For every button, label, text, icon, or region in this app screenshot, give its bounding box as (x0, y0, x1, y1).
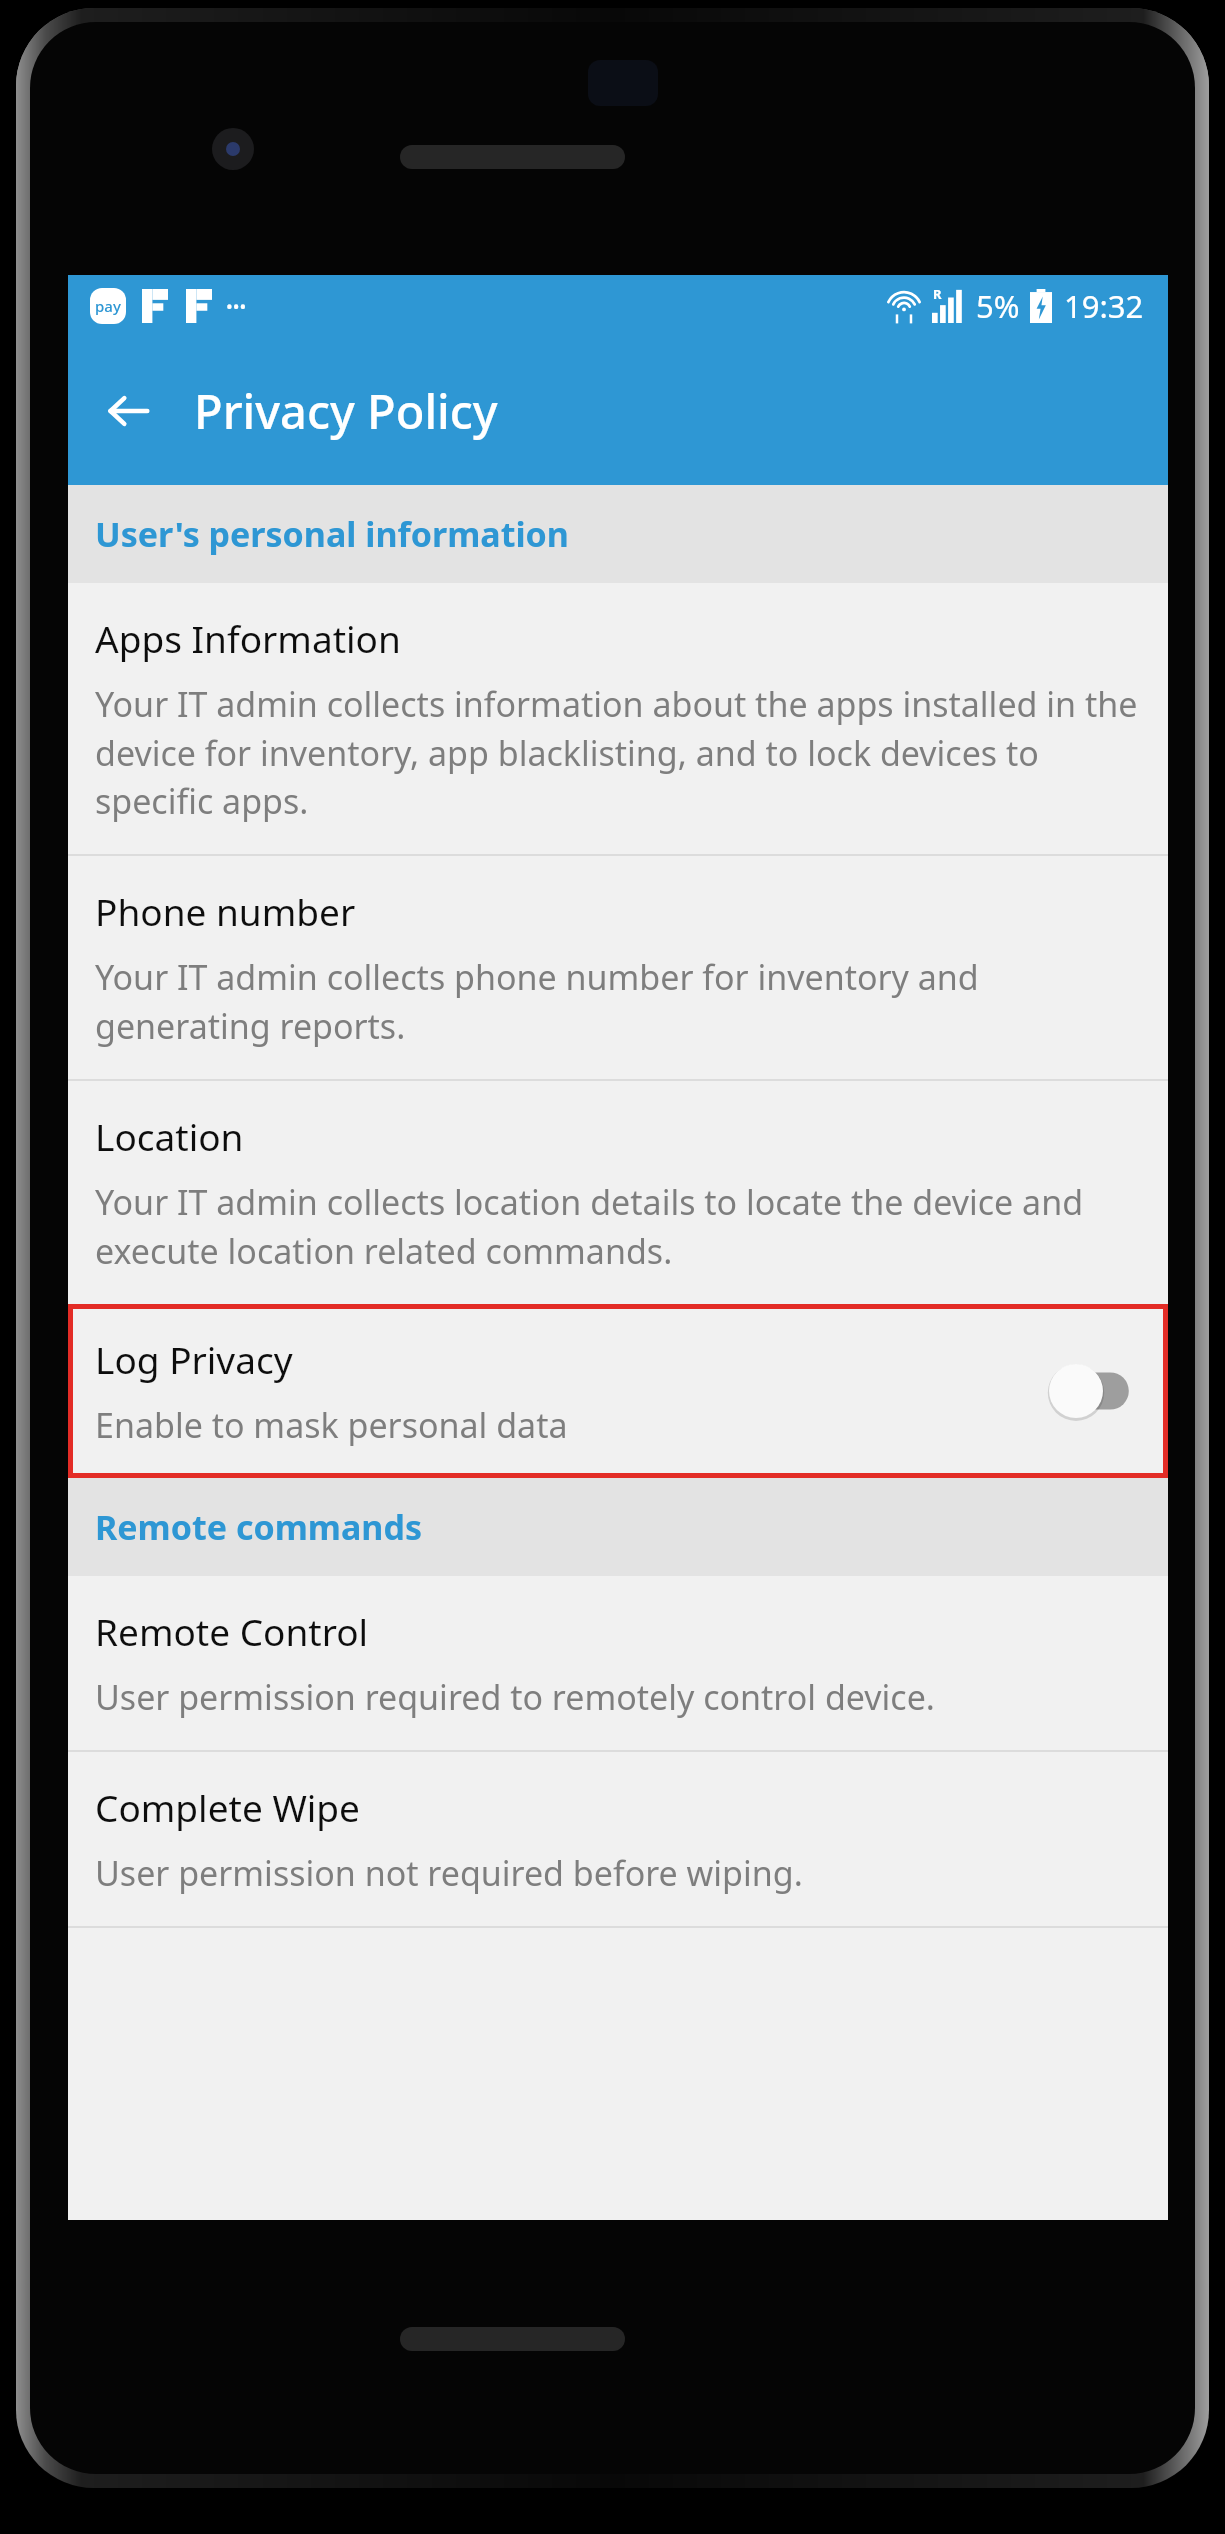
button[interactable]: Phone number (68, 856, 1168, 1079)
staticText: Remote Control (95, 1606, 369, 1656)
button[interactable]: Apps Information (68, 583, 1168, 854)
button[interactable]: Back (90, 373, 166, 449)
staticText: Phone number (95, 886, 356, 936)
staticText: ••• (226, 294, 247, 319)
staticText: pay (95, 296, 121, 316)
staticText: Privacy Policy (194, 379, 498, 443)
button[interactable]: Location (68, 1081, 1168, 1304)
staticText: R (933, 285, 942, 303)
button[interactable]: Remote Control (68, 1576, 1168, 1750)
staticText: Your IT admin collects information about… (95, 681, 1141, 824)
staticText: Enable to mask personal data (95, 1402, 568, 1448)
staticText: User permission not required before wipi… (95, 1850, 803, 1896)
staticText: Your IT admin collects location details … (95, 1179, 1141, 1274)
button[interactable]: Complete Wipe (68, 1752, 1168, 1926)
staticText: Your IT admin collects phone number for … (95, 954, 1141, 1049)
staticText: Location (95, 1111, 244, 1161)
staticText: User permission required to remotely con… (95, 1674, 935, 1720)
staticText: Log Privacy (95, 1334, 293, 1384)
staticText: 5% (976, 285, 1020, 327)
staticText: 19:32 (1064, 285, 1144, 327)
staticText: User's personal information (95, 511, 569, 557)
staticText: Complete Wipe (95, 1782, 360, 1832)
staticText: Remote commands (95, 1504, 423, 1550)
other: Log Privacy toggle (1046, 1361, 1138, 1421)
staticText: Apps Information (95, 613, 401, 663)
button[interactable]: Log Privacy (68, 1304, 1168, 1478)
